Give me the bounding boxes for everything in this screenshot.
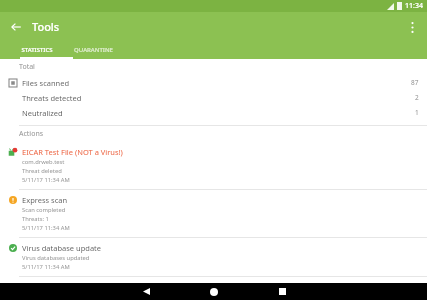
staticText: 5/11/17 11:34 AM: [22, 176, 70, 184]
button[interactable]: More options: [400, 15, 424, 39]
staticText: Total: [19, 62, 35, 72]
staticText: Actions: [19, 129, 44, 139]
staticText: QUARANTINE: [74, 46, 113, 54]
button[interactable]: STATISTICS: [20, 41, 53, 59]
staticText: Express scan: [22, 195, 68, 205]
staticText: Scan completed: [22, 206, 66, 214]
button[interactable]: Threats detected: [0, 90, 427, 105]
staticText: Neutralized: [22, 108, 415, 118]
button[interactable]: Express scan: [0, 190, 427, 237]
staticText: Threats detected: [22, 93, 415, 103]
staticText: 11:34: [405, 1, 423, 11]
staticText: Threat deleted: [22, 167, 62, 175]
staticText: Files scanned: [22, 78, 411, 88]
button[interactable]: Virus database update: [0, 238, 427, 276]
staticText: 1: [415, 108, 419, 117]
button[interactable]: Recent apps: [263, 283, 301, 300]
staticText: 5/11/17 11:34 AM: [22, 224, 70, 232]
staticText: EICAR Test File (NOT a Virus!): [22, 147, 123, 157]
button[interactable]: Home: [195, 283, 233, 300]
staticText: 2: [415, 93, 419, 102]
button[interactable]: QUARANTINE: [53, 41, 133, 59]
button[interactable]: Back: [127, 283, 165, 300]
staticText: STATISTICS: [21, 46, 53, 54]
staticText: 87: [411, 78, 419, 87]
button[interactable]: EICAR Test File (NOT a Virus!): [0, 142, 427, 189]
staticText: 5/11/17 11:34 AM: [22, 263, 70, 271]
button[interactable]: Back: [4, 15, 28, 39]
staticText: Virus databases updated: [22, 254, 90, 262]
button[interactable]: Neutralized: [0, 105, 427, 120]
button[interactable]: Files scanned: [0, 75, 427, 90]
staticText: com.drweb.test: [22, 158, 65, 166]
staticText: Tools: [32, 19, 60, 34]
staticText: Virus database update: [22, 243, 102, 253]
staticText: Threats: 1: [22, 215, 49, 223]
